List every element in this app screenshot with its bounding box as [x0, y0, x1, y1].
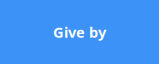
staticText: Give by — [53, 22, 106, 42]
